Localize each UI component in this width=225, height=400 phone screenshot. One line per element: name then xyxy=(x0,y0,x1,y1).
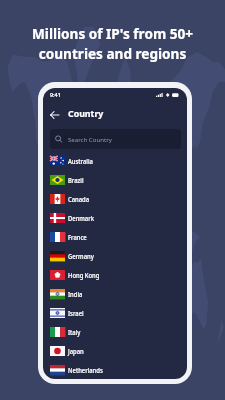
button[interactable]: Australia xyxy=(43,151,187,170)
button[interactable]: Brazil xyxy=(43,170,187,189)
staticText: Denmark xyxy=(68,214,94,223)
button[interactable]: Japan xyxy=(43,341,187,360)
button[interactable]: Netherlands xyxy=(43,360,187,379)
button[interactable]: France xyxy=(43,227,187,246)
staticText: Search Country xyxy=(68,135,112,143)
button[interactable]: Hong Kong xyxy=(43,265,187,284)
staticText: Millions of IP's from 50+ countries and … xyxy=(10,24,215,63)
staticText: Germany xyxy=(68,252,94,261)
staticText: Australia xyxy=(68,157,93,166)
button[interactable]: Israel xyxy=(43,303,187,322)
staticText: Japan xyxy=(68,347,84,356)
staticText: Netherlands xyxy=(68,366,103,375)
staticText: Hong Kong xyxy=(68,271,99,280)
button[interactable]: Denmark xyxy=(43,208,187,227)
staticText: Italy xyxy=(68,328,81,337)
staticText: Country xyxy=(68,108,104,120)
button[interactable]: Search Country xyxy=(50,129,181,149)
button[interactable]: Back xyxy=(46,106,63,123)
button[interactable]: Germany xyxy=(43,246,187,265)
staticText: Brazil xyxy=(68,176,84,185)
staticText: India xyxy=(68,290,82,299)
button[interactable]: India xyxy=(43,284,187,303)
staticText: 9:41 xyxy=(50,91,61,98)
staticText: France xyxy=(68,233,88,242)
staticText: Canada xyxy=(68,195,89,204)
button[interactable]: Canada xyxy=(43,189,187,208)
button[interactable]: Italy xyxy=(43,322,187,341)
staticText: Israel xyxy=(68,309,84,318)
